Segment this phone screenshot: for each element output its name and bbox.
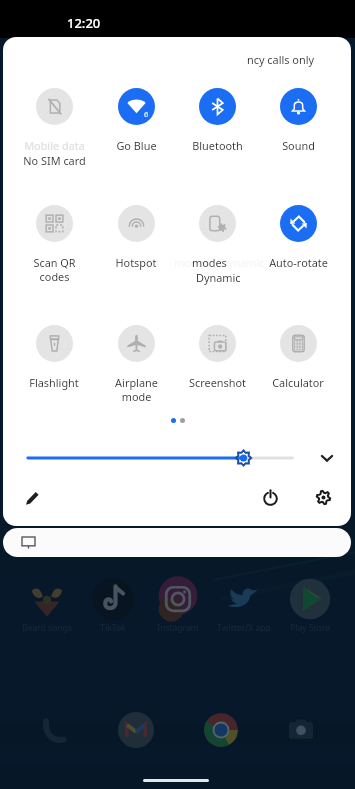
- button[interactable]: Airplane mode: [95, 325, 177, 417]
- button[interactable]: TikTok: [83, 578, 143, 636]
- staticText: Screenshot: [189, 375, 246, 390]
- button[interactable]: Media output: [3, 528, 351, 557]
- staticText: Scan QR codes: [33, 255, 76, 285]
- staticText: Play Store: [290, 622, 330, 634]
- staticText: Mobile data: [24, 138, 85, 153]
- button[interactable]: Expand quick settings: [316, 447, 338, 469]
- button[interactable]: Scan QR codes: [13, 205, 95, 297]
- button[interactable]: Gmail: [114, 708, 158, 752]
- button[interactable]: Hotspot: [95, 205, 177, 297]
- button[interactable]: Instagram: [148, 578, 208, 636]
- staticText: Hotspot: [115, 255, 157, 270]
- staticText: Flashlight: [29, 375, 79, 390]
- button[interactable]: Calculator: [257, 325, 339, 417]
- button[interactable]: Power: [260, 487, 281, 508]
- button[interactable]: Play Store: [280, 578, 340, 636]
- button[interactable]: Chrome: [199, 708, 243, 752]
- staticText: 6: [144, 109, 149, 119]
- button[interactable]: Mobile data: [13, 88, 95, 180]
- staticText: TikTok: [100, 622, 126, 634]
- button[interactable]: Edit: [21, 487, 42, 508]
- button[interactable]: Camera: [279, 708, 323, 752]
- staticText: Bluetooth: [192, 138, 243, 153]
- button[interactable]: Sound: [257, 88, 339, 180]
- button[interactable]: Screenshot: [176, 325, 258, 417]
- staticText: Sound: [282, 138, 315, 153]
- staticText: Airplane mode: [115, 375, 158, 405]
- button[interactable]: Phone: [32, 708, 76, 752]
- button[interactable]: Twitter/X app: [214, 578, 274, 636]
- staticText: Dynamic: [196, 270, 241, 285]
- staticText: ncy calls only: [247, 52, 315, 67]
- button[interactable]: Settings: [313, 487, 334, 508]
- staticText: Calculator: [272, 375, 324, 390]
- button[interactable]: Dynamic: [176, 205, 258, 297]
- button[interactable]: 6: [95, 88, 177, 180]
- button[interactable]: Bluetooth: [176, 88, 258, 180]
- button[interactable]: Beard songs: [17, 578, 77, 636]
- staticText: modes: [192, 255, 227, 270]
- staticText: Auto-rotate: [269, 255, 328, 270]
- staticText: 12:20: [67, 14, 101, 32]
- staticText: Go Blue: [116, 138, 157, 153]
- button[interactable]: Auto-rotate: [257, 205, 339, 297]
- staticText: Dynamic: [220, 255, 265, 270]
- staticText: Beard songs: [22, 622, 72, 634]
- button[interactable]: Flashlight: [13, 325, 95, 417]
- staticText: No SIM card: [23, 153, 86, 168]
- staticText: Twitter/X app: [217, 622, 271, 634]
- staticText: modes: [174, 255, 209, 270]
- staticText: Instagram: [157, 622, 199, 634]
